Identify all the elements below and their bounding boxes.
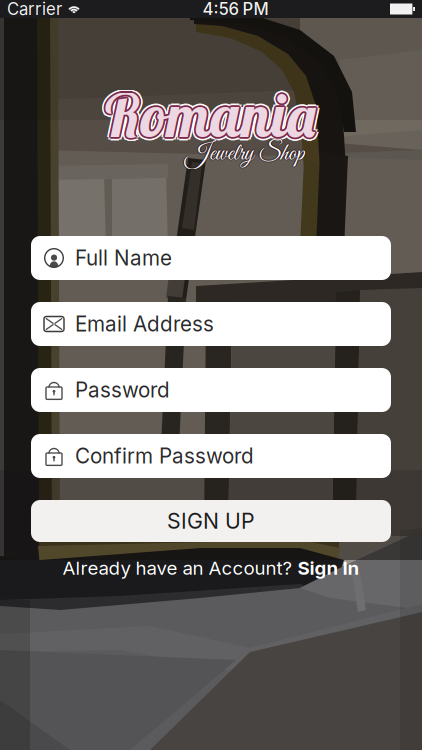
staticText: Romania [100,78,316,152]
staticText: Romania [102,82,318,155]
staticText: Sign In [297,557,359,579]
staticText: Jewelry Shop [184,139,303,169]
staticText: Password [75,377,170,402]
staticText: Email Address [75,311,214,336]
staticText: Romania [105,78,321,152]
staticText: Romania [103,79,319,153]
staticText: Jewelry Shop [185,138,304,168]
button[interactable]: Already have an Account? [62,557,359,579]
staticText: Romania [100,81,316,154]
staticText: Romania [102,77,318,150]
staticText: Full Name [75,245,172,270]
button[interactable]: Full Name [31,236,391,280]
staticText: Jewelry Shop [185,140,304,170]
staticText: Romania [102,78,318,152]
staticText: Romania [103,77,319,150]
staticText: Romania [99,78,315,152]
staticText: Romania [102,75,318,148]
staticText: SIGN UP [167,508,255,534]
staticText: Romania [102,80,318,153]
staticText: Jewelry Shop [185,139,304,169]
button[interactable]: SIGN UP [31,500,391,542]
staticText: Romania [104,76,320,149]
staticText: Romania [100,76,316,149]
staticText: Already have an Account? [62,557,292,579]
staticText: Jewelry Shop [187,139,306,169]
staticText: Carrier [7,0,62,19]
staticText: Romania [104,78,320,152]
staticText: Romania [101,77,317,150]
staticText: Romania [101,79,317,153]
button[interactable]: Email Address [31,302,391,346]
staticText: Romania [104,81,320,154]
button[interactable]: Confirm Password [31,434,391,478]
staticText: 4:56 PM [202,0,268,19]
staticText: Confirm Password [75,443,254,468]
button[interactable]: Password [31,368,391,412]
